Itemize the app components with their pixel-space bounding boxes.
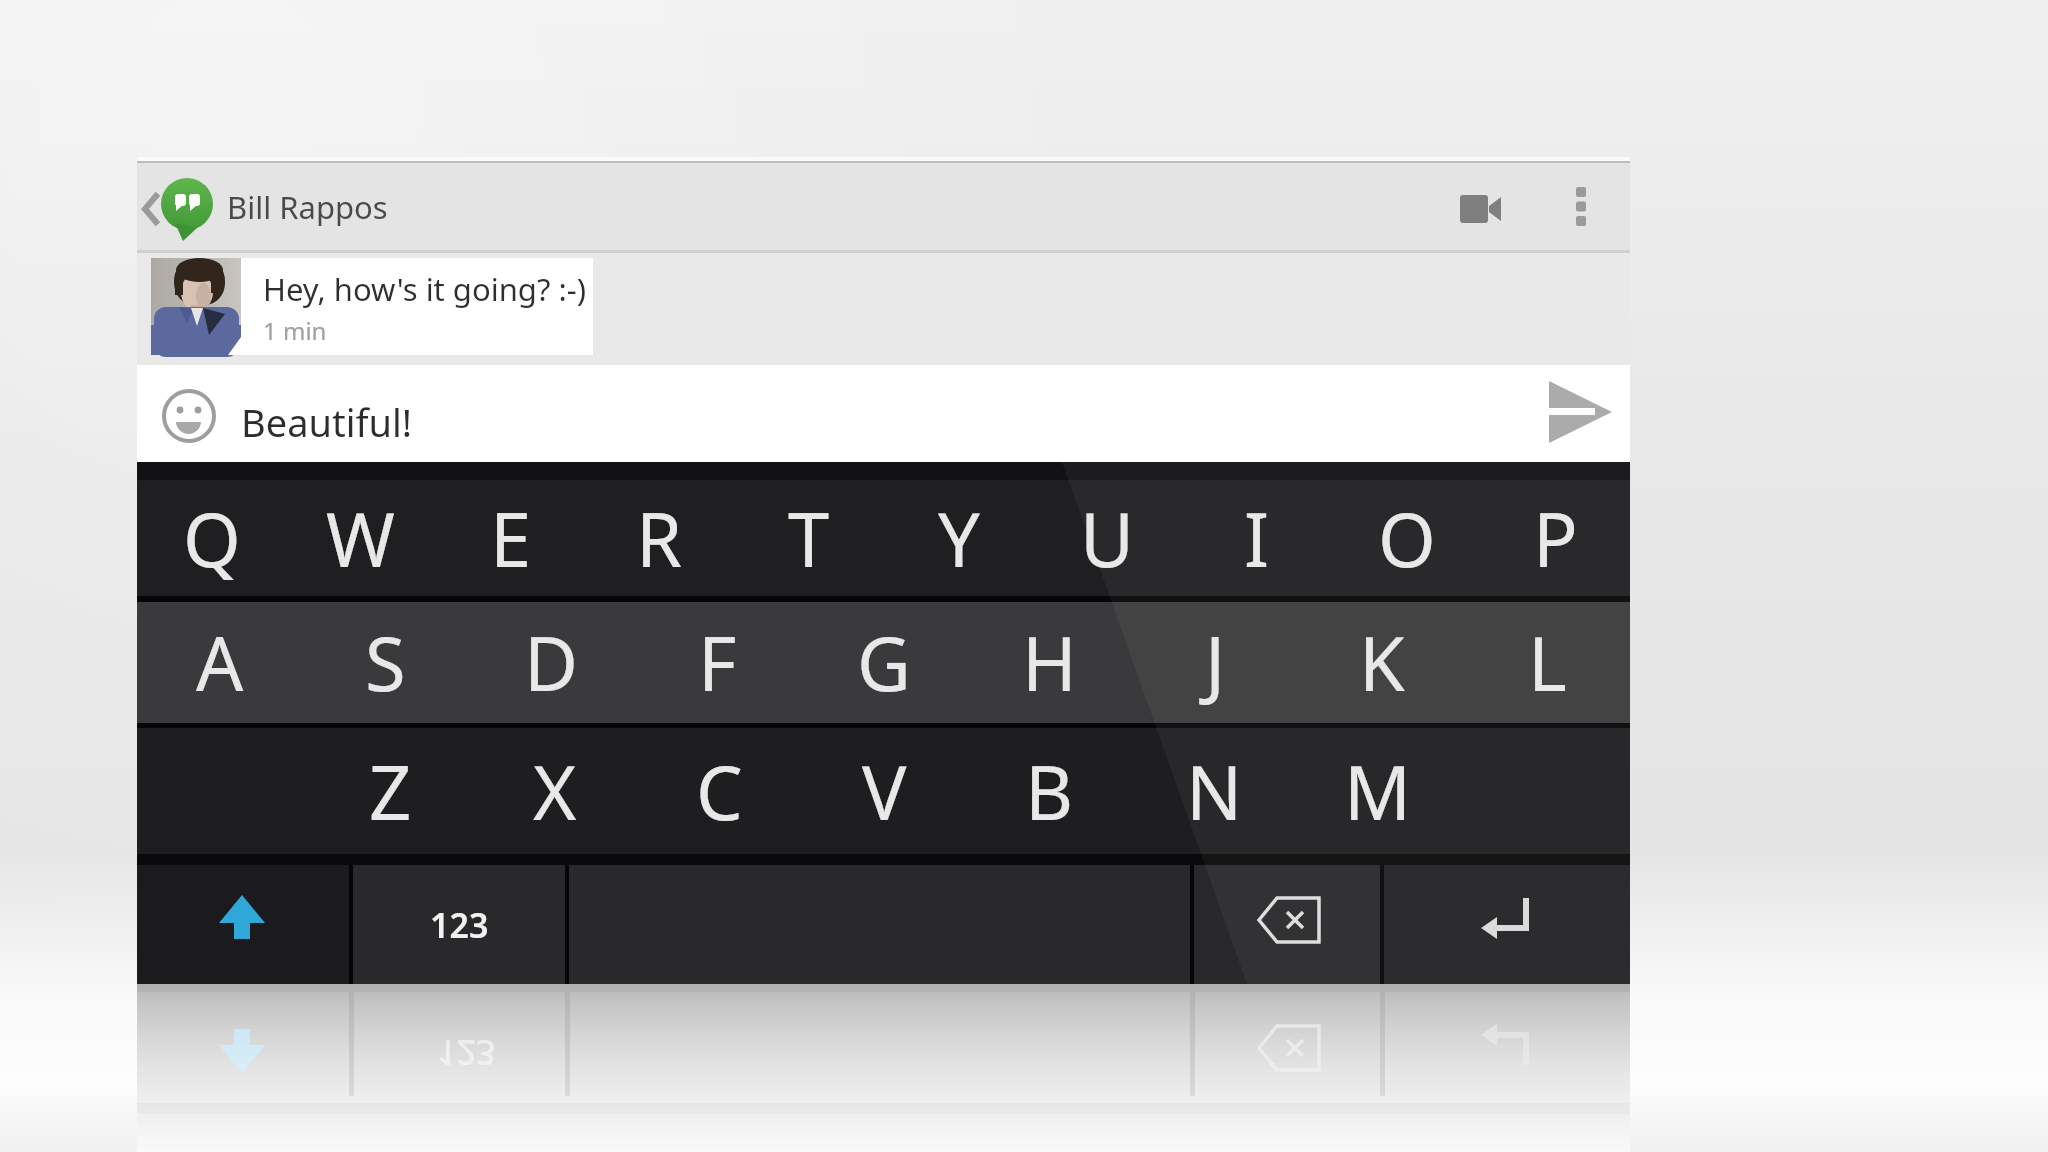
- button[interactable]: D: [469, 602, 634, 723]
- button[interactable]: T: [734, 480, 883, 596]
- button[interactable]: P: [1481, 480, 1630, 596]
- button[interactable]: C: [637, 728, 801, 854]
- button[interactable]: M: [1296, 728, 1460, 854]
- staticText: B: [1025, 741, 1074, 842]
- staticText: C: [696, 741, 743, 842]
- button[interactable]: L: [1465, 602, 1630, 723]
- staticText: W: [326, 488, 395, 589]
- staticText: Beautiful!: [241, 396, 413, 448]
- staticText: R: [636, 488, 683, 589]
- staticText: T: [788, 488, 830, 589]
- staticText: A: [196, 612, 244, 713]
- staticText: K: [1359, 612, 1405, 713]
- staticText: I: [1244, 488, 1270, 589]
- button[interactable]: B: [967, 728, 1131, 854]
- button[interactable]: X: [473, 728, 637, 854]
- button[interactable]: N: [1132, 728, 1296, 854]
- button[interactable]: W: [286, 480, 435, 596]
- staticText: N: [1186, 741, 1243, 842]
- button[interactable]: 123: [353, 865, 565, 984]
- button[interactable]: I: [1182, 480, 1331, 596]
- staticText: P: [1533, 488, 1578, 589]
- button[interactable]: [137, 163, 225, 250]
- staticText: 123: [437, 1030, 496, 1076]
- button[interactable]: Hey, how's it going? :-): [151, 258, 593, 355]
- staticText: Hey, how's it going? :-): [263, 268, 587, 310]
- button[interactable]: Q: [137, 480, 286, 596]
- staticText: G: [857, 612, 911, 713]
- button[interactable]: G: [801, 602, 966, 723]
- staticText: M: [1344, 741, 1412, 842]
- button[interactable]: [1537, 372, 1625, 452]
- staticText: J: [1205, 612, 1226, 713]
- button[interactable]: U: [1033, 480, 1182, 596]
- button[interactable]: [161, 388, 217, 444]
- button[interactable]: S: [303, 602, 468, 723]
- button[interactable]: V: [802, 728, 966, 854]
- staticText: Z: [369, 741, 412, 842]
- button[interactable]: R: [585, 480, 734, 596]
- staticText: H: [1022, 612, 1077, 713]
- button[interactable]: [1437, 177, 1517, 237]
- staticText: D: [524, 612, 579, 713]
- button[interactable]: E: [436, 480, 585, 596]
- staticText: 123: [430, 902, 489, 948]
- staticText: V: [862, 741, 907, 842]
- staticText: S: [365, 612, 406, 713]
- staticText: L: [1528, 612, 1567, 713]
- staticText: Q: [183, 488, 241, 589]
- staticText: X: [533, 741, 577, 842]
- button[interactable]: Y: [884, 480, 1033, 596]
- staticText: F: [698, 612, 737, 713]
- button[interactable]: [1194, 865, 1380, 984]
- button[interactable]: [1384, 865, 1630, 984]
- staticText: E: [490, 488, 532, 589]
- staticText: 1 min: [263, 314, 327, 347]
- button[interactable]: K: [1299, 602, 1464, 723]
- button[interactable]: F: [635, 602, 800, 723]
- button[interactable]: [137, 865, 349, 984]
- button[interactable]: O: [1332, 480, 1481, 596]
- button[interactable]: [1552, 177, 1612, 237]
- staticText: U: [1080, 488, 1135, 589]
- button[interactable]: A: [137, 602, 302, 723]
- button[interactable]: H: [967, 602, 1132, 723]
- staticText: Y: [938, 488, 980, 589]
- button[interactable]: J: [1133, 602, 1298, 723]
- staticText: O: [1378, 488, 1436, 589]
- staticText: Bill Rappos: [227, 186, 388, 228]
- button[interactable]: Z: [308, 728, 472, 854]
